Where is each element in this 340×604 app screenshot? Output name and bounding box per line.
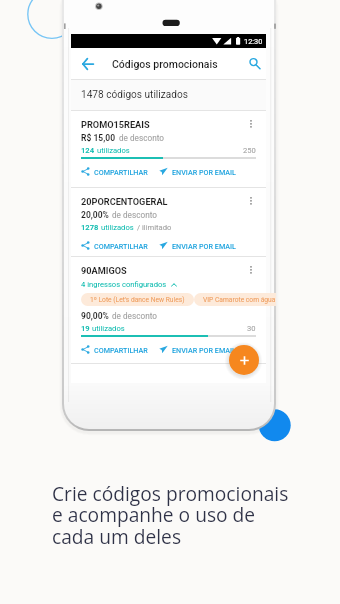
- staticText: Códigos promocionais: [112, 58, 218, 70]
- staticText: COMPARTILHAR: [94, 168, 148, 176]
- button[interactable]: COMPARTILHAR: [81, 241, 159, 250]
- staticText: VIP Camarote com água: [203, 296, 276, 304]
- button[interactable]: More options: [246, 265, 256, 275]
- staticText: 1º Lote (Let's dance New Rules): [90, 296, 185, 304]
- staticText: 19: [81, 324, 90, 333]
- button[interactable]: More options: [246, 119, 256, 129]
- staticText: 20PORCENTOGERAL: [81, 196, 168, 207]
- staticText: 124: [81, 146, 95, 155]
- button[interactable]: 4 ingressos configurados: [81, 280, 177, 289]
- button[interactable]: More options: [246, 196, 256, 206]
- staticText: ENVIAR POR EMAIL: [172, 346, 236, 354]
- staticText: COMPARTILHAR: [94, 346, 148, 354]
- staticText: de desconto: [112, 311, 157, 321]
- staticText: 90AMIGOS: [81, 265, 127, 276]
- button[interactable]: 1º Lote (Let's dance New Rules): [81, 293, 194, 306]
- staticText: R$ 15,00: [81, 133, 116, 143]
- staticText: 4 ingressos configurados: [81, 280, 167, 289]
- staticText: utilizados: [92, 324, 125, 333]
- staticText: utilizados: [101, 223, 134, 232]
- staticText: 250: [243, 146, 256, 155]
- button[interactable]: Search: [244, 49, 266, 79]
- button[interactable]: Add promo code: [229, 345, 259, 375]
- button[interactable]: VIP Camarote com água: [194, 293, 276, 306]
- staticText: 1478 códigos utilizados: [81, 89, 188, 101]
- staticText: ENVIAR POR EMAIL: [172, 242, 236, 250]
- staticText: de desconto: [119, 133, 164, 143]
- staticText: 30: [247, 324, 256, 333]
- staticText: 90,00%: [81, 311, 109, 321]
- button[interactable]: COMPARTILHAR: [81, 345, 159, 354]
- button[interactable]: ENVIAR POR EMAIL: [159, 241, 236, 250]
- staticText: 12:30: [244, 37, 263, 46]
- staticText: Crie códigos promocionais e acompanhe o …: [52, 480, 289, 550]
- staticText: COMPARTILHAR: [94, 242, 148, 250]
- button[interactable]: ENVIAR POR EMAIL: [159, 167, 236, 176]
- button[interactable]: ENVIAR POR EMAIL: [159, 345, 236, 354]
- button[interactable]: COMPARTILHAR: [81, 167, 159, 176]
- staticText: ENVIAR POR EMAIL: [172, 168, 236, 176]
- staticText: 1278: [81, 223, 99, 232]
- staticText: PROMO15REAIS: [81, 119, 150, 130]
- button[interactable]: Back: [76, 49, 99, 79]
- staticText: / ilimitado: [137, 223, 172, 232]
- staticText: utilizados: [97, 146, 130, 155]
- staticText: de desconto: [112, 210, 157, 220]
- staticText: 20,00%: [81, 210, 109, 220]
